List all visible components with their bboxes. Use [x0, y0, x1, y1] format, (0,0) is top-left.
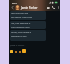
staticText: Jamie is typing... [10, 44, 26, 47]
staticText: the report I sent this [11, 16, 33, 19]
staticText: together in the [11, 35, 27, 38]
button[interactable]: Great, let's review it [10, 30, 46, 41]
button[interactable]: Jamie Parker [15, 4, 46, 11]
button[interactable]: Hey! Did you see [10, 11, 46, 20]
staticText: The numbers look [11, 26, 30, 28]
button[interactable]: Yes, just finished it. [10, 21, 46, 29]
staticText: Yes, just finished it. [11, 22, 31, 25]
staticText: 9:41 [12, 1, 17, 4]
button[interactable]: Back [10, 4, 15, 11]
staticText: Great, let's review it [11, 31, 32, 34]
button[interactable]: Call [51, 4, 56, 11]
button[interactable]: Video call [46, 4, 51, 11]
staticText: Hey! Did you see [11, 12, 29, 15]
staticText: Jamie Parker [21, 6, 38, 10]
button[interactable]: More options [56, 4, 60, 11]
